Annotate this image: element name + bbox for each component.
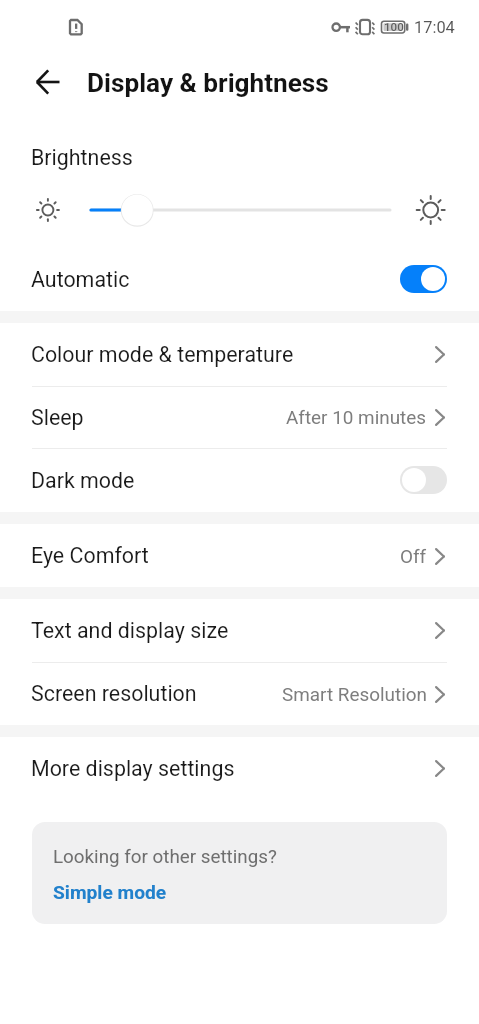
- staticText: Colour mode & temperature: [31, 342, 294, 367]
- button[interactable]: Text and display size: [0, 599, 479, 662]
- staticText: Smart Resolution: [282, 683, 427, 705]
- staticText: Dark mode: [31, 468, 135, 493]
- button[interactable]: Back: [24, 58, 72, 106]
- staticText: Brightness: [31, 145, 133, 170]
- staticText: Simple mode: [53, 881, 167, 904]
- button[interactable]: Screen resolution: [0, 662, 479, 725]
- button[interactable]: Automatic: [0, 247, 479, 311]
- button[interactable]: Simple mode: [46, 874, 160, 897]
- staticText: Sleep: [31, 405, 84, 430]
- staticText: 17:04: [414, 18, 455, 37]
- button[interactable]: More display settings: [0, 737, 479, 800]
- button[interactable]: Brightness slider: [0, 184, 479, 236]
- button[interactable]: Colour mode & temperature: [0, 322, 479, 386]
- staticText: Text and display size: [31, 618, 229, 643]
- staticText: Off: [400, 545, 427, 567]
- staticText: Looking for other settings?: [53, 846, 277, 868]
- staticText: Automatic: [31, 267, 130, 292]
- staticText: 100: [384, 20, 404, 34]
- staticText: Display & brightness: [87, 68, 329, 99]
- staticText: After 10 minutes: [286, 406, 427, 428]
- button[interactable]: Eye Comfort: [0, 524, 479, 587]
- button[interactable]: Dark mode: [0, 448, 479, 512]
- staticText: Screen resolution: [31, 681, 197, 706]
- button[interactable]: Sleep: [0, 386, 479, 448]
- staticText: More display settings: [31, 756, 235, 781]
- staticText: Eye Comfort: [31, 543, 149, 568]
